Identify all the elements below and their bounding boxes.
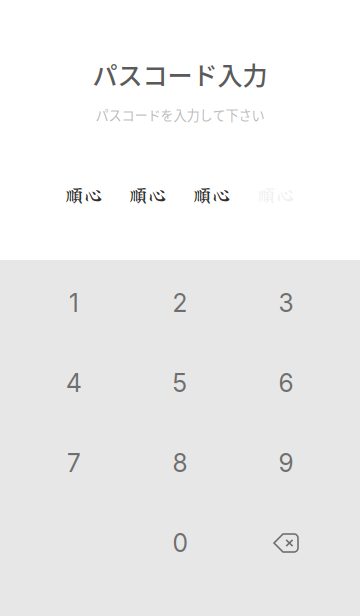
staticText: 順心 xyxy=(65,181,103,208)
staticText: 1 xyxy=(69,288,79,318)
button[interactable]: 8 xyxy=(127,423,233,503)
button[interactable]: Delete xyxy=(233,503,339,583)
button[interactable]: 9 xyxy=(233,423,339,503)
staticText: 2 xyxy=(172,288,187,318)
staticText: 順心 xyxy=(257,181,295,208)
staticText: 順心 xyxy=(129,181,167,208)
button[interactable]: 5 xyxy=(127,343,233,423)
button[interactable]: 6 xyxy=(233,343,339,423)
staticText: 3 xyxy=(278,288,293,318)
staticText: 9 xyxy=(278,448,293,478)
button[interactable]: 1 xyxy=(21,263,127,343)
button[interactable]: 3 xyxy=(233,263,339,343)
staticText: 順心 xyxy=(193,181,231,208)
button[interactable]: 4 xyxy=(21,343,127,423)
staticText: 4 xyxy=(66,368,82,398)
staticText: 8 xyxy=(172,448,187,478)
button[interactable]: 2 xyxy=(127,263,233,343)
button[interactable]: 0 xyxy=(127,503,233,583)
staticText: 7 xyxy=(67,448,81,478)
button[interactable]: 7 xyxy=(21,423,127,503)
staticText: 5 xyxy=(172,368,187,398)
staticText: 6 xyxy=(278,368,293,398)
staticText: パスコード入力 xyxy=(92,56,267,92)
staticText: パスコードを入力して下さい xyxy=(95,105,264,124)
staticText: 0 xyxy=(172,528,187,558)
